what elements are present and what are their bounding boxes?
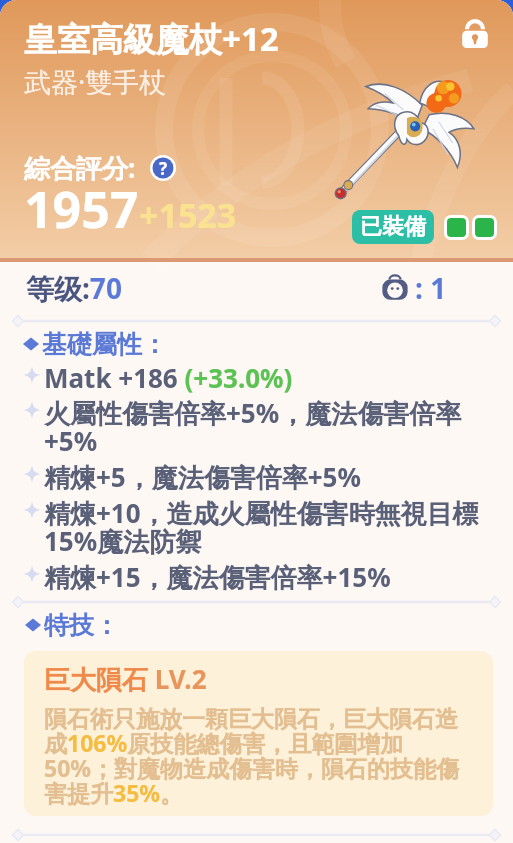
staticText: ? xyxy=(159,157,168,180)
staticText: 精煉+15，魔法傷害倍率+15% xyxy=(44,559,391,595)
staticText: 皇室高級魔杖+12 xyxy=(24,16,279,61)
staticText: : 1 xyxy=(415,269,447,307)
button[interactable]: Help xyxy=(150,155,176,181)
staticText: 武器·雙手杖 xyxy=(24,63,167,100)
button[interactable]: Lock xyxy=(459,18,491,50)
staticText: 精煉+10，造成火屬性傷害時無視目標15%魔法防禦 xyxy=(44,495,501,559)
staticText: 火屬性傷害倍率+5%，魔法傷害倍率+5% xyxy=(44,395,501,459)
staticText: 隕石術只施放一顆巨大隕石，巨大隕石造成106%原技能總傷害，且範圍增加50%；對… xyxy=(44,705,465,809)
staticText: Matk +186 (+33.0%) xyxy=(44,360,293,395)
staticText: 基礎屬性： xyxy=(42,329,167,360)
staticText: 1957 xyxy=(24,175,139,243)
staticText: 等级:70 xyxy=(26,269,122,307)
staticText: 巨大隕石 LV.2 xyxy=(44,661,207,697)
staticText: 綜合評分: xyxy=(24,150,136,186)
staticText: 精煉+5，魔法傷害倍率+5% xyxy=(44,459,361,495)
staticText: +1523 xyxy=(139,192,237,238)
button[interactable]: 已裝備 xyxy=(352,210,434,244)
button[interactable]: 巨大隕石 LV.2 xyxy=(24,651,493,816)
staticText: 特技： xyxy=(44,610,119,641)
staticText: 已裝備 xyxy=(360,213,426,241)
